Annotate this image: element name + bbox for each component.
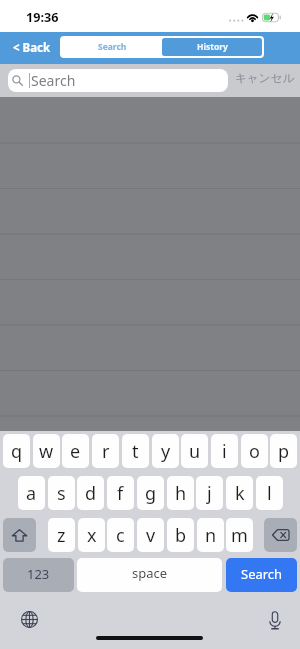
button[interactable]: l bbox=[256, 476, 283, 510]
staticText: < Back bbox=[13, 40, 51, 56]
staticText: f bbox=[117, 481, 124, 506]
button[interactable]: f bbox=[107, 476, 134, 510]
button[interactable]: キャンセル bbox=[231, 68, 299, 89]
staticText: space bbox=[132, 564, 168, 582]
button[interactable]: Dictation bbox=[263, 608, 287, 632]
button[interactable]: o bbox=[241, 434, 268, 468]
staticText: 19:36 bbox=[26, 9, 59, 26]
staticText: n bbox=[205, 523, 217, 548]
button[interactable]: History bbox=[162, 38, 262, 56]
button[interactable]: x bbox=[78, 518, 105, 552]
staticText: c bbox=[116, 523, 125, 548]
button[interactable]: g bbox=[137, 476, 164, 510]
staticText: k bbox=[235, 481, 245, 506]
button[interactable]: 123 bbox=[3, 558, 74, 592]
staticText: キャンセル bbox=[235, 71, 295, 86]
button[interactable]: b bbox=[167, 518, 194, 552]
staticText: r bbox=[102, 439, 110, 464]
button[interactable]: j bbox=[196, 476, 223, 510]
staticText: v bbox=[146, 523, 156, 548]
staticText: e bbox=[70, 439, 81, 464]
staticText: q bbox=[11, 439, 23, 464]
button[interactable]: w bbox=[33, 434, 60, 468]
button[interactable]: c bbox=[107, 518, 134, 552]
button[interactable]: i bbox=[211, 434, 238, 468]
button[interactable]: < Back bbox=[5, 36, 59, 60]
button[interactable]: Search bbox=[8, 69, 228, 92]
button[interactable]: m bbox=[226, 518, 253, 552]
staticText: 123 bbox=[27, 565, 50, 583]
button[interactable]: Change keyboard bbox=[17, 607, 41, 631]
staticText: Search bbox=[241, 565, 283, 583]
staticText: Search bbox=[31, 71, 76, 90]
staticText: d bbox=[85, 481, 97, 506]
button[interactable]: p bbox=[270, 434, 297, 468]
button[interactable]: Search bbox=[226, 558, 297, 592]
staticText: z bbox=[57, 523, 66, 548]
staticText: t bbox=[132, 439, 139, 464]
staticText: o bbox=[249, 439, 260, 464]
button[interactable]: h bbox=[167, 476, 194, 510]
staticText: j bbox=[207, 481, 212, 506]
button[interactable]: e bbox=[62, 434, 89, 468]
staticText: g bbox=[145, 481, 157, 506]
staticText: w bbox=[39, 439, 54, 464]
staticText: p bbox=[278, 439, 290, 464]
staticText: l bbox=[267, 481, 272, 506]
button[interactable]: s bbox=[48, 476, 75, 510]
staticText: b bbox=[175, 523, 187, 548]
staticText: x bbox=[87, 523, 97, 548]
button[interactable]: t bbox=[122, 434, 149, 468]
staticText: y bbox=[161, 439, 171, 464]
button[interactable]: u bbox=[181, 434, 208, 468]
button[interactable]: Shift bbox=[3, 518, 36, 552]
staticText: m bbox=[231, 523, 248, 548]
staticText: u bbox=[189, 439, 201, 464]
staticText: Search bbox=[98, 41, 127, 53]
button[interactable]: n bbox=[197, 518, 224, 552]
staticText: h bbox=[175, 481, 187, 506]
button[interactable]: a bbox=[18, 476, 45, 510]
staticText: s bbox=[57, 481, 66, 506]
button[interactable]: r bbox=[92, 434, 119, 468]
button[interactable]: q bbox=[3, 434, 30, 468]
button[interactable]: d bbox=[77, 476, 104, 510]
button[interactable]: space bbox=[77, 558, 222, 592]
button[interactable]: Delete bbox=[264, 518, 297, 552]
staticText: History bbox=[197, 41, 228, 53]
button[interactable]: y bbox=[152, 434, 179, 468]
button[interactable]: v bbox=[137, 518, 164, 552]
staticText: a bbox=[26, 481, 37, 506]
button[interactable]: k bbox=[226, 476, 253, 510]
button[interactable]: z bbox=[48, 518, 75, 552]
button[interactable]: Search bbox=[62, 38, 162, 56]
staticText: i bbox=[222, 439, 227, 464]
